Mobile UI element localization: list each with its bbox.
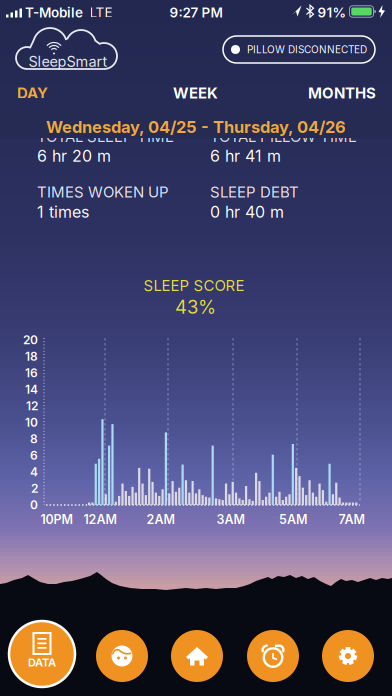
staticText: 20 [23,333,38,347]
staticText: 2 [31,481,38,496]
button[interactable]: MONTHS [296,79,388,107]
staticText: 1 times [37,203,89,221]
staticText: 6 hr 41 m [210,147,281,165]
staticText: 3AM [216,512,245,527]
button[interactable]: PILLOW DISCONNECTED [223,36,375,63]
staticText: T-Mobile [25,4,83,20]
button[interactable]: Alarm [247,630,299,682]
staticText: 12 [26,399,38,413]
staticText: 2AM [146,512,175,527]
staticText: 14 [25,382,38,397]
staticText: 4 [30,465,38,479]
staticText: 0 [30,498,38,512]
staticText: 43% [175,296,216,318]
staticText: 91% [317,4,346,20]
staticText: DAY [17,84,48,102]
button[interactable]: DAY [0,79,64,107]
staticText: 10PM [40,512,73,527]
staticText: 16 [25,366,38,380]
staticText: 8 [30,432,38,446]
staticText: SLEEP SCORE [143,277,244,294]
staticText: LTE [89,4,112,20]
staticText: WEEK [173,84,218,102]
staticText: 18 [25,349,38,364]
button[interactable]: WEEK [159,79,231,107]
staticText: TOTAL SLEEP TIME [37,128,174,145]
staticText: 6 hr 20 m [37,147,111,165]
button[interactable]: Settings [322,630,374,682]
button[interactable]: DATA [9,621,75,687]
button[interactable]: Home [171,630,223,682]
staticText: PILLOW DISCONNECTED [247,44,367,55]
staticText: 7AM [338,512,365,527]
staticText: Wednesday, 04/25 - Thursday, 04/26 [46,117,346,137]
staticText: TIMES WOKEN UP [37,183,169,201]
staticText: DATA [28,656,56,669]
staticText: 10 [25,415,38,430]
staticText: 12AM [83,512,117,527]
staticText: 6 [30,448,38,463]
staticText: MONTHS [308,84,376,102]
staticText: SleepSmart [28,53,107,70]
staticText: 0 hr 40 m [210,203,284,221]
staticText: SLEEP DEBT [210,183,299,201]
staticText: 5AM [279,512,308,527]
staticText: TOTAL PILLOW TIME [210,128,357,145]
button[interactable]: Baby [96,630,148,682]
staticText: 9:27 PM [169,4,222,20]
